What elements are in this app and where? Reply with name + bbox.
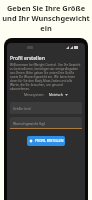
button[interactable]: Metrisch (48, 91, 69, 98)
staticText: Messsystem: (24, 92, 45, 97)
button[interactable]: Wunschgewicht (kg) (10, 117, 82, 129)
staticText: Geben Sie Ihre Größe und Ihr Wunschgewic… (0, 3, 92, 33)
staticText: Größe (cm) (13, 106, 31, 111)
staticText: Willkommen bei Weight Control. Um Ihr Ge… (10, 63, 82, 91)
button[interactable]: Größe (cm) (10, 102, 82, 114)
button[interactable]: PROFIL ERSTELLEN (27, 136, 65, 146)
staticText: Profil erstellen (10, 55, 45, 62)
staticText: Metrisch (49, 92, 63, 97)
staticText: PROFIL ERSTELLEN (35, 139, 64, 143)
staticText: Wunschgewicht (kg) (13, 121, 45, 126)
